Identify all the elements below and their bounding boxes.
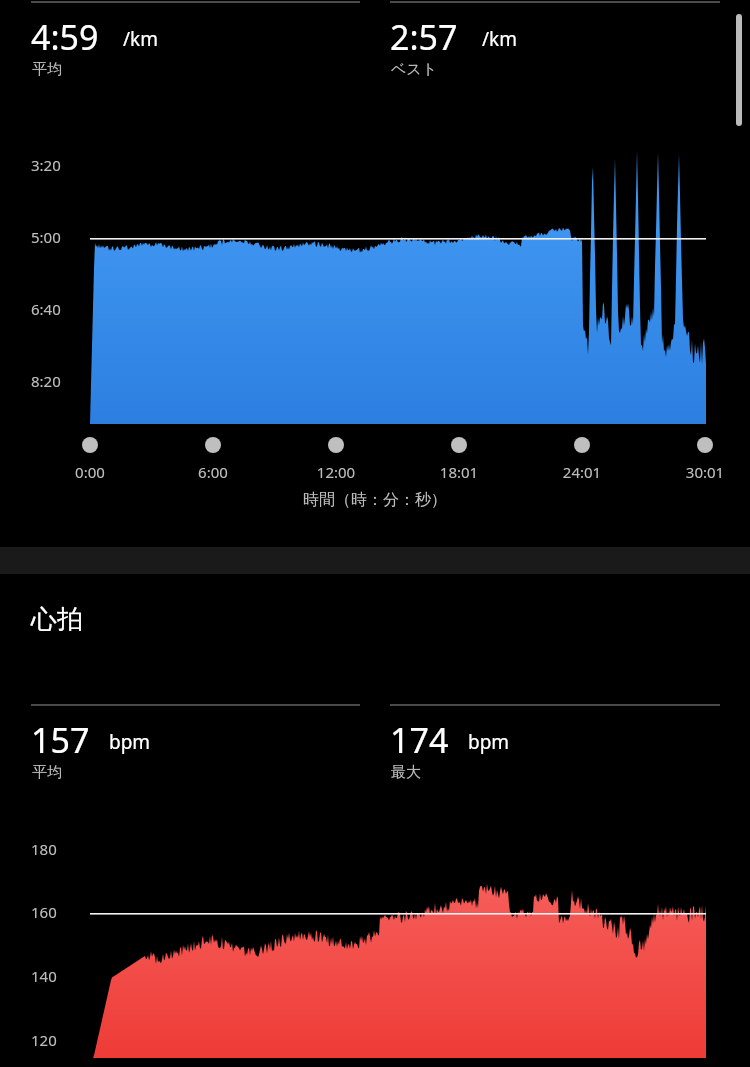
staticText: 心拍	[31, 603, 83, 636]
staticText: 2:57	[390, 14, 458, 60]
button[interactable]: 157	[31, 717, 361, 797]
staticText: 157	[31, 717, 90, 763]
staticText: 4:59	[31, 14, 99, 60]
staticText: 120	[31, 1030, 57, 1050]
staticText: 180	[31, 839, 57, 859]
staticText: 6:00	[173, 462, 253, 486]
staticText: 平均	[32, 60, 62, 79]
staticText: 18:01	[419, 462, 499, 486]
staticText: bpm	[109, 729, 151, 755]
staticText: 140	[31, 966, 57, 986]
staticText: 3:20	[31, 155, 61, 175]
staticText: 24:01	[542, 462, 622, 486]
staticText: 0:00	[50, 462, 130, 486]
staticText: 12:00	[296, 462, 376, 486]
staticText: 5:00	[31, 227, 61, 247]
staticText: 174	[390, 717, 449, 763]
staticText: bpm	[468, 729, 510, 755]
other: Heart rate chart	[0, 0, 750, 1067]
button[interactable]: 4:59	[31, 14, 361, 94]
staticText: /km	[123, 26, 158, 52]
staticText: 6:40	[31, 299, 61, 319]
staticText: ベスト	[391, 60, 438, 79]
button[interactable]: 2:57	[390, 14, 720, 94]
other: Pace chart	[0, 0, 750, 1067]
staticText: 160	[31, 902, 57, 922]
staticText: 8:20	[31, 371, 61, 391]
staticText: /km	[482, 26, 517, 52]
staticText: 最大	[391, 763, 421, 782]
staticText: 30:01	[665, 462, 745, 486]
staticText: 時間（時：分：秒）	[275, 490, 475, 516]
button[interactable]: 174	[390, 717, 720, 797]
staticText: 平均	[32, 763, 62, 782]
